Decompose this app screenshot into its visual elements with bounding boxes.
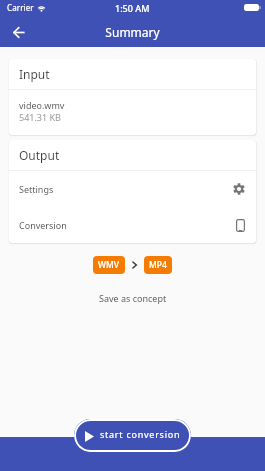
button[interactable]: start conversion	[74, 419, 191, 452]
staticText: Carrier	[7, 2, 34, 13]
staticText: Settings	[19, 183, 54, 195]
button[interactable]: Conversion	[9, 207, 256, 243]
button[interactable]: WMV	[93, 256, 125, 274]
staticText: Save as concept	[99, 292, 167, 304]
staticText: 1:50 AM	[115, 2, 150, 14]
button[interactable]: Settings	[9, 171, 256, 207]
staticText: Summary	[105, 24, 160, 40]
staticText: start conversion	[100, 428, 181, 440]
other: Conversion device	[236, 219, 245, 232]
staticText: video.wmv	[19, 99, 65, 111]
staticText: Input	[19, 66, 50, 82]
button[interactable]: Save as concept	[93, 289, 173, 307]
staticText: Output	[19, 147, 60, 163]
staticText: Conversion	[19, 219, 67, 231]
button[interactable]: MP4	[144, 256, 172, 274]
staticText: WMV	[98, 259, 120, 271]
staticText: MP4	[149, 259, 167, 271]
staticText: 541.31 KB	[19, 111, 61, 123]
other: Settings	[233, 183, 245, 195]
button[interactable]: Back	[7, 21, 30, 44]
